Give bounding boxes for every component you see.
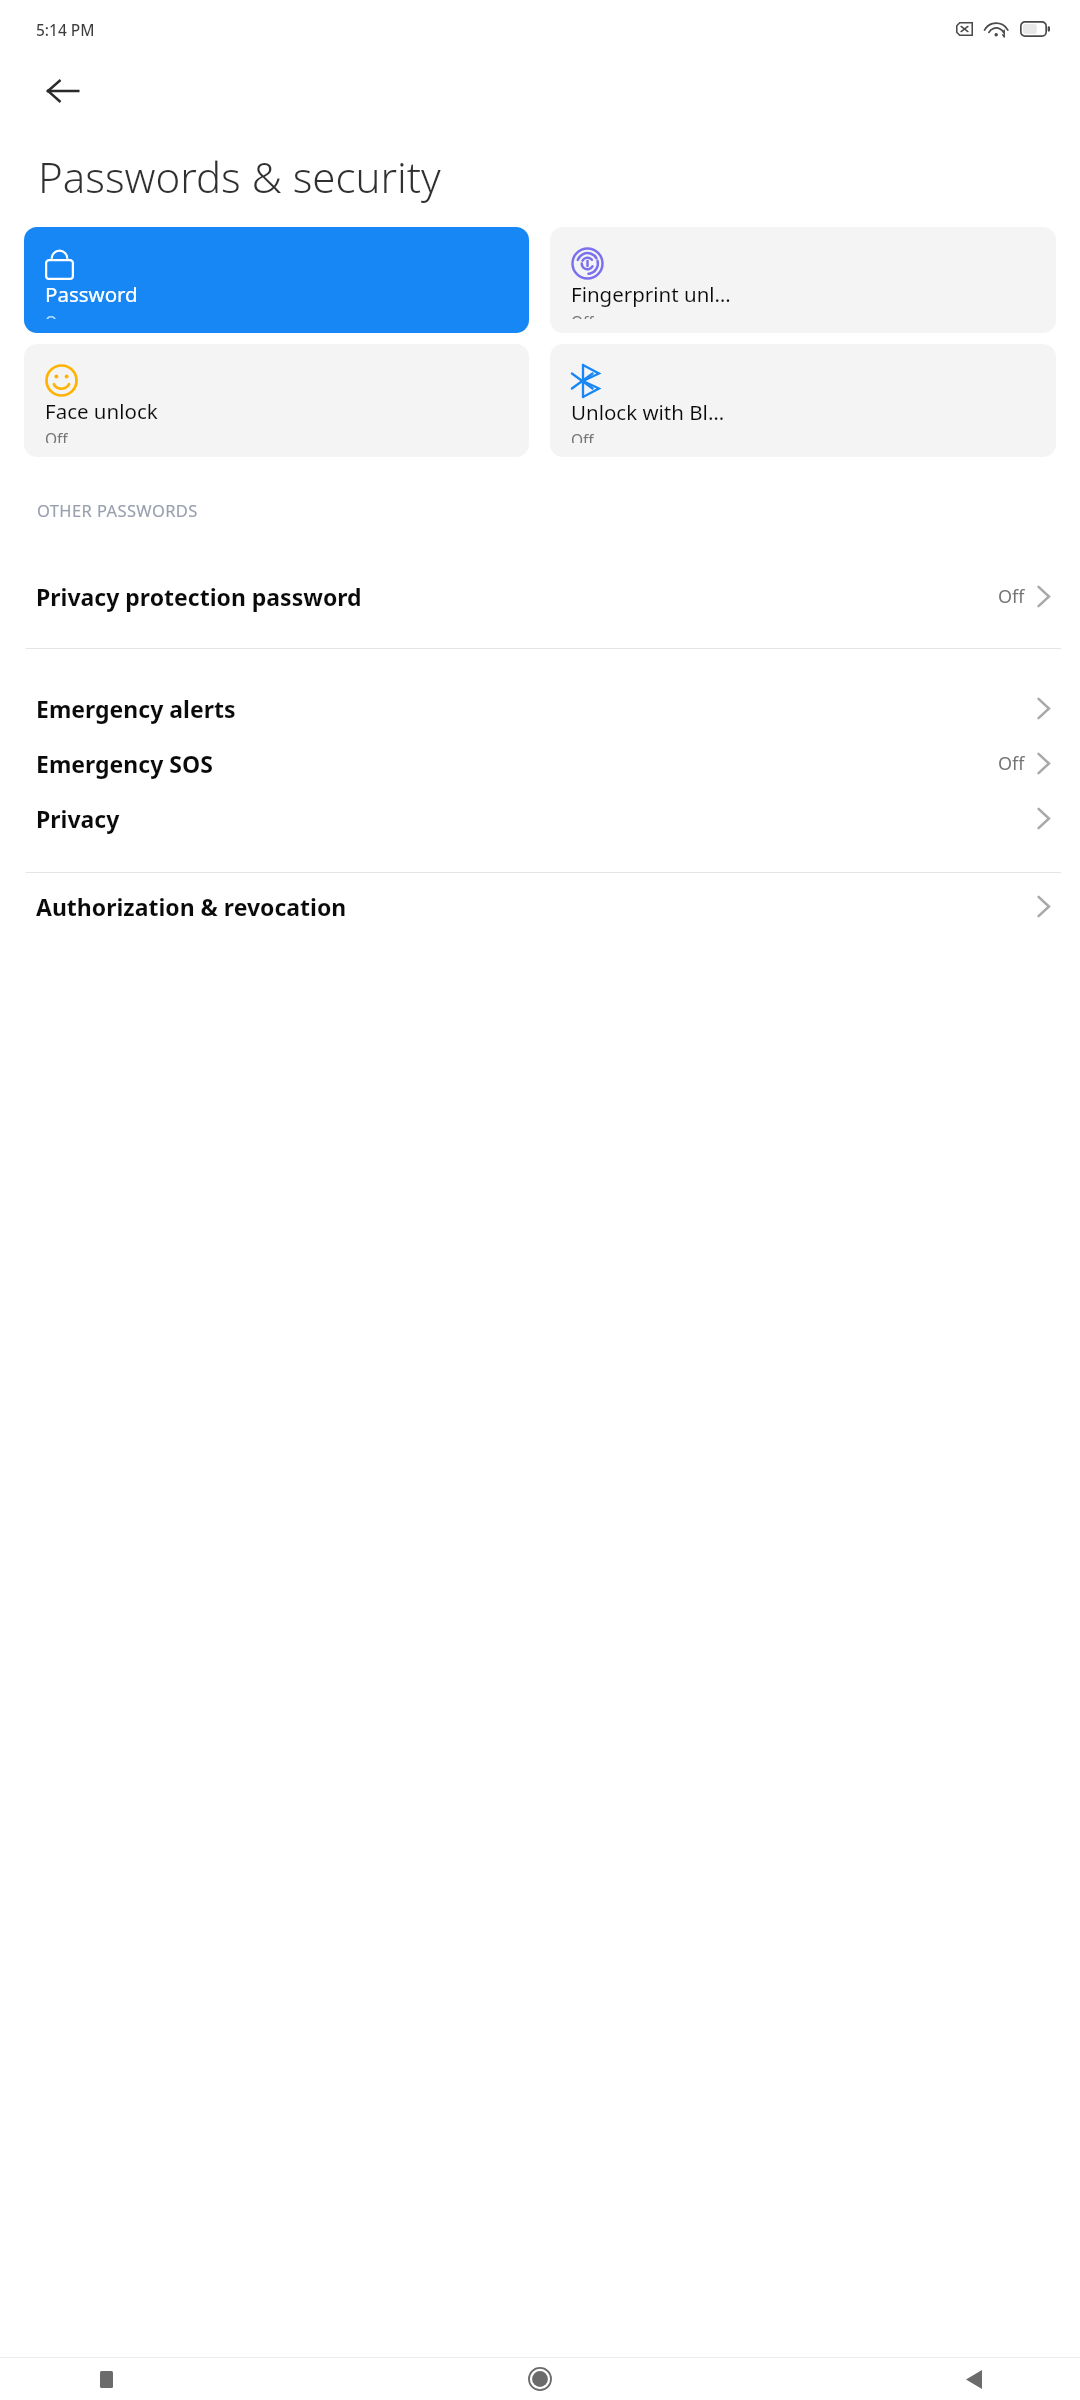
staticText: Privacy — [36, 803, 1037, 834]
button[interactable]: Privacy protection password — [0, 521, 1080, 618]
staticText: Emergency SOS — [36, 748, 998, 779]
staticText: Off — [998, 584, 1025, 609]
button[interactable]: Back — [954, 2359, 994, 2399]
button[interactable]: Face unlock — [24, 344, 529, 457]
staticText: Passwords & security — [38, 148, 441, 205]
staticText: Off — [45, 428, 68, 443]
button[interactable]: Back — [40, 68, 86, 114]
staticText: Unlock with Bl… — [571, 398, 725, 426]
staticText: 5:14 PM — [36, 19, 95, 40]
staticText: Off — [998, 751, 1025, 776]
button[interactable]: Emergency alerts — [0, 649, 1080, 730]
button[interactable]: Home — [520, 2359, 560, 2399]
staticText: Password — [45, 280, 138, 308]
staticText: OTHER PASSWORDS — [37, 499, 198, 521]
staticText: Authorization & revocation — [36, 891, 1037, 922]
staticText: Fingerprint unl… — [571, 280, 731, 308]
button[interactable]: Authorization & revocation — [0, 873, 1080, 928]
button[interactable]: Privacy — [0, 785, 1080, 840]
button[interactable]: Password — [24, 227, 529, 333]
staticText: Off — [571, 311, 594, 319]
staticText: On — [45, 311, 67, 319]
staticText: Off — [571, 429, 594, 443]
staticText: Emergency alerts — [36, 693, 1037, 724]
staticText: Privacy protection password — [36, 581, 998, 612]
staticText: Face unlock — [45, 397, 158, 425]
button[interactable]: Fingerprint unl… — [550, 227, 1056, 333]
button[interactable]: Recent apps — [86, 2359, 126, 2399]
button[interactable]: Unlock with Bl… — [550, 344, 1056, 457]
button[interactable]: Emergency SOS — [0, 730, 1080, 785]
